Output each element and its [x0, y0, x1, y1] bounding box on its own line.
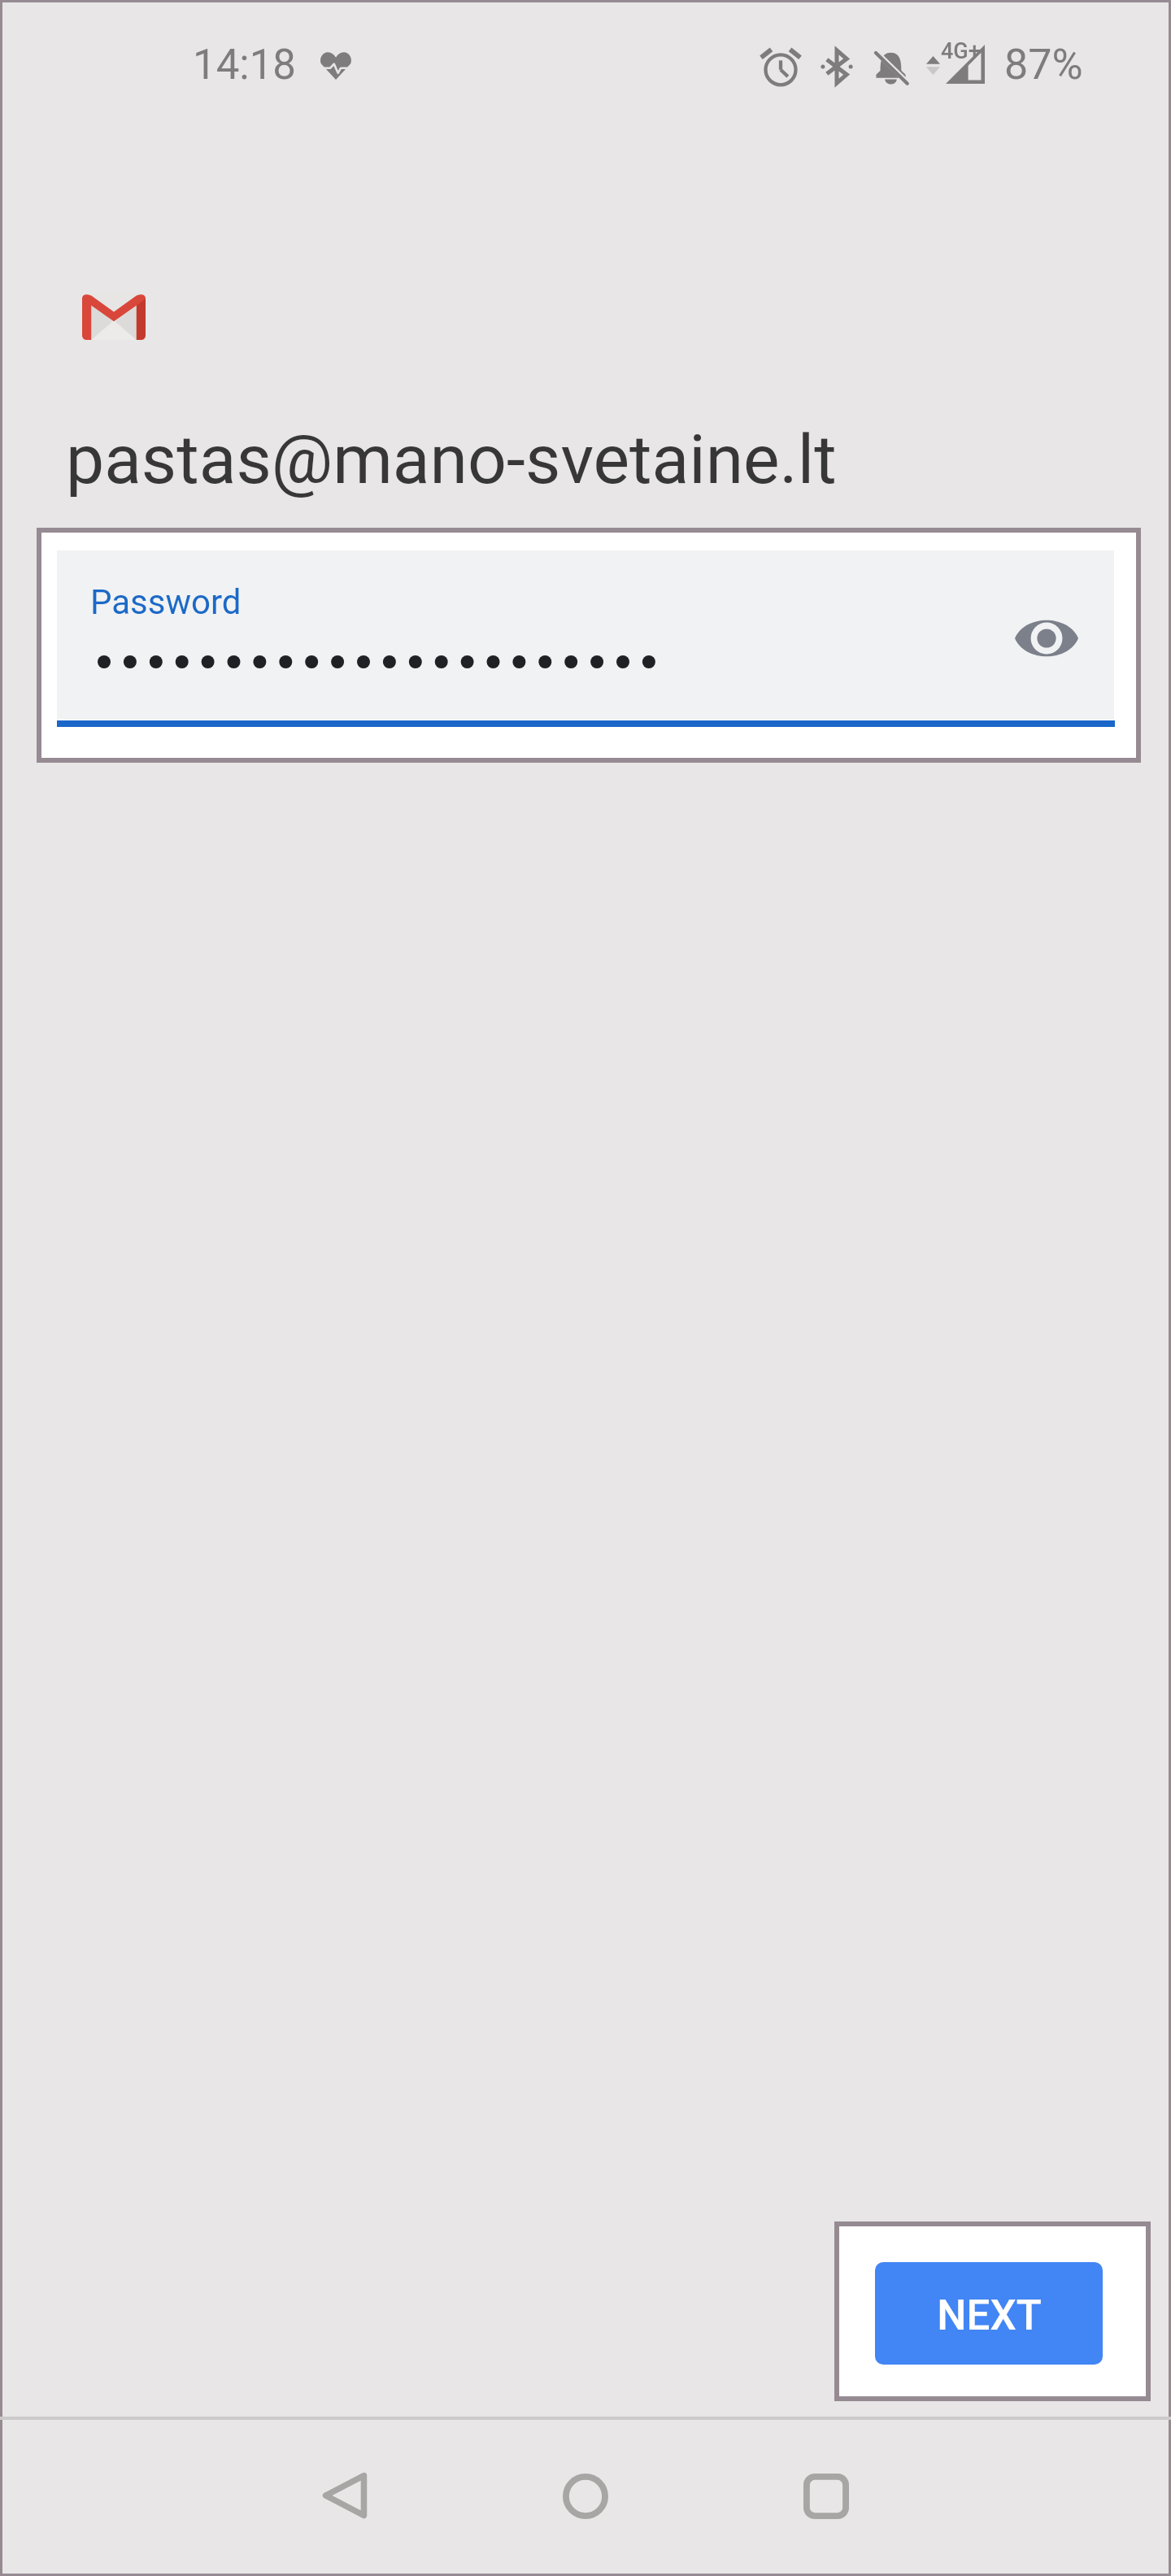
staticText: pastas@mano-svetaine.lt [66, 420, 837, 499]
button[interactable]: Password [41, 533, 1136, 758]
staticText: 4G+ [941, 38, 981, 64]
staticText: 14:18 [193, 41, 297, 89]
button[interactable]: Home [563, 2474, 608, 2519]
staticText: Password [90, 582, 242, 622]
button[interactable]: Back [322, 2472, 368, 2519]
button[interactable]: NEXT [875, 2262, 1103, 2365]
button[interactable]: Recent apps [803, 2474, 849, 2519]
staticText: 87% [1004, 40, 1083, 89]
staticText: NEXT [937, 2291, 1042, 2340]
button[interactable]: Show password [1015, 616, 1078, 660]
